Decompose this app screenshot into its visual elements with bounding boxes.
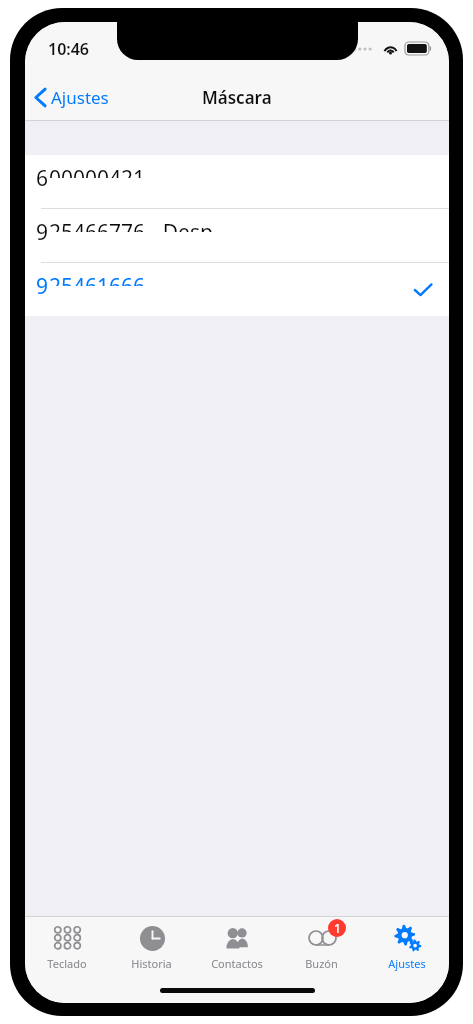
staticText: 10:46 bbox=[48, 38, 90, 60]
button[interactable]: 9 bbox=[25, 263, 449, 316]
staticText: 1 bbox=[334, 920, 341, 936]
other: Buzón bbox=[308, 930, 337, 946]
button[interactable]: Buzón bbox=[279, 917, 364, 971]
staticText: 9 bbox=[36, 218, 49, 247]
button[interactable]: Ajustes bbox=[25, 80, 119, 115]
staticText: 00000421 bbox=[49, 164, 146, 178]
button[interactable]: Contactos bbox=[194, 917, 279, 971]
button[interactable]: Historia bbox=[109, 917, 194, 971]
other: Ajustes bbox=[393, 924, 421, 952]
staticText: Ajustes bbox=[51, 86, 109, 109]
other: Historia bbox=[140, 926, 165, 951]
button[interactable]: 6 bbox=[25, 155, 449, 208]
other: Teclado bbox=[54, 926, 81, 950]
staticText: Teclado bbox=[47, 956, 87, 971]
staticText: 25461666 bbox=[49, 272, 146, 286]
other: Contactos bbox=[223, 927, 251, 949]
staticText: 25466776 - Desp bbox=[49, 218, 213, 232]
button[interactable]: Ajustes bbox=[364, 917, 449, 971]
staticText: Buzón bbox=[305, 956, 338, 971]
button[interactable]: 9 bbox=[25, 209, 449, 262]
staticText: Ajustes bbox=[388, 956, 426, 971]
staticText: 9 bbox=[36, 272, 49, 301]
button[interactable]: Teclado bbox=[25, 917, 109, 971]
staticText: Contactos bbox=[211, 956, 263, 971]
staticText: 6 bbox=[36, 164, 49, 193]
staticText: Máscara bbox=[202, 86, 272, 109]
staticText: Historia bbox=[131, 956, 172, 971]
